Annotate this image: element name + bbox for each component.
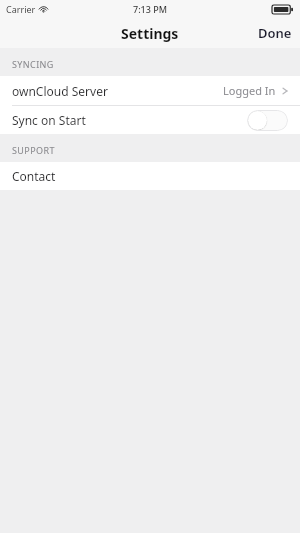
staticText: ownCloud Server (12, 83, 108, 99)
staticText: Settings (121, 24, 179, 43)
staticText: Done (258, 24, 292, 42)
button[interactable]: ownCloud Server (0, 76, 300, 105)
button[interactable]: Sync on Start (0, 106, 300, 134)
staticText: Carrier (6, 3, 36, 15)
staticText: SUPPORT (12, 144, 55, 156)
button[interactable]: Done (250, 19, 300, 47)
staticText: Logged In (223, 83, 276, 98)
button[interactable]: Sync on Start toggle, off (247, 110, 288, 131)
staticText: 7:13 PM (133, 3, 167, 15)
staticText: SYNCING (12, 58, 54, 70)
button[interactable]: Contact (0, 162, 300, 190)
staticText: Sync on Start (12, 112, 86, 128)
staticText: Contact (12, 168, 56, 184)
